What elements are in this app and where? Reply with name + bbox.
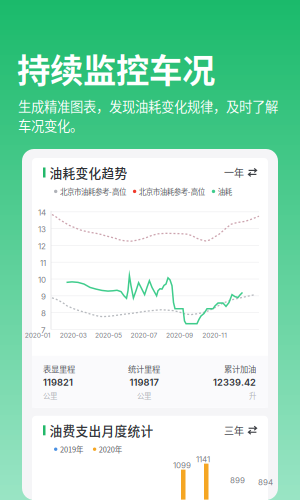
staticText: 2020年 <box>99 444 122 455</box>
staticText: 1099 <box>173 461 191 470</box>
staticText: 升 <box>249 390 256 401</box>
staticText: 7 <box>41 325 46 335</box>
staticText: 2020-09 <box>166 331 193 339</box>
staticText: 11 <box>40 258 46 268</box>
staticText: 一年 <box>224 165 244 180</box>
staticText: 北京市油耗参考-高位 <box>139 186 205 197</box>
staticText: 统计里程 <box>128 363 160 375</box>
staticText: 2020-03 <box>60 331 87 339</box>
staticText: 2020-07 <box>130 331 157 339</box>
staticText: 8 <box>41 309 46 318</box>
staticText: 累计加油 <box>224 363 256 375</box>
staticText: 油耗变化趋势 <box>49 163 127 182</box>
staticText: 12339.42 <box>213 377 256 388</box>
staticText: 119821 <box>43 377 73 388</box>
staticText: 2020-01 <box>25 331 51 339</box>
staticText: 14 <box>38 208 46 217</box>
staticText: 2020-05 <box>95 331 122 339</box>
staticText: 生成精准图表，发现油耗变化规律，及时了解车况变化。 <box>18 96 278 135</box>
staticText: 公里 <box>137 390 151 401</box>
staticText: 三年 <box>224 423 244 438</box>
staticText: 北京市油耗参考-高位 <box>60 186 126 197</box>
staticText: 油费支出月度统计 <box>49 421 153 439</box>
staticText: 13 <box>38 225 46 234</box>
button[interactable]: 一年 <box>224 164 257 181</box>
staticText: 2019年 <box>60 444 83 455</box>
staticText: 10 <box>38 275 46 285</box>
staticText: 899 <box>230 476 245 485</box>
staticText: 表显里程 <box>43 363 75 375</box>
staticText: 公里 <box>43 390 57 401</box>
staticText: 油耗 <box>218 186 232 197</box>
staticText: 894 <box>258 478 273 487</box>
button[interactable]: 三年 <box>224 422 257 439</box>
staticText: 9 <box>41 292 46 301</box>
staticText: 119817 <box>129 377 158 388</box>
staticText: 持续监控车况 <box>17 44 215 92</box>
staticText: 2020-11 <box>202 331 227 339</box>
staticText: 12 <box>38 241 46 251</box>
staticText: 1141 <box>196 455 210 464</box>
